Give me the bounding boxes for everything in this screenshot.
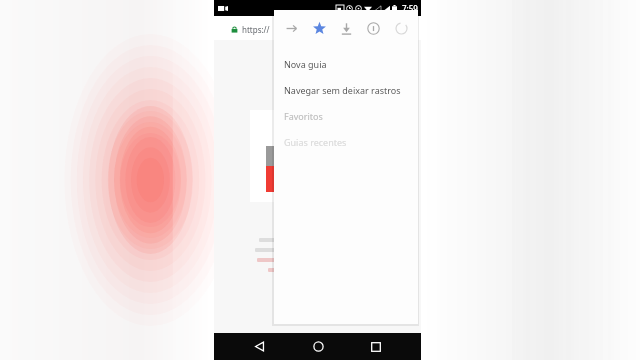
- button[interactable]: Favoritos: [274, 103, 418, 129]
- button[interactable]: Nova guia: [274, 51, 418, 77]
- staticText: 7:59: [402, 3, 418, 14]
- button[interactable]: Download: [333, 15, 359, 41]
- button[interactable]: Home: [304, 333, 332, 360]
- button[interactable]: Guias recentes: [274, 129, 418, 155]
- staticText: Navegar sem deixar rastros: [284, 84, 401, 96]
- button[interactable]: Page info: [360, 15, 386, 41]
- staticText: Guias recentes: [284, 136, 347, 148]
- staticText: https://: [242, 24, 270, 35]
- button[interactable]: Recent apps: [362, 333, 390, 360]
- button[interactable]: Back: [245, 333, 273, 360]
- button[interactable]: Reload: [388, 15, 414, 41]
- button[interactable]: Bookmark: [306, 15, 332, 41]
- button[interactable]: Forward: [278, 15, 304, 41]
- button[interactable]: Navegar sem deixar rastros: [274, 77, 418, 103]
- staticText: Nova guia: [284, 58, 327, 70]
- staticText: Favoritos: [284, 110, 323, 122]
- button[interactable]: Address bar: [220, 20, 340, 38]
